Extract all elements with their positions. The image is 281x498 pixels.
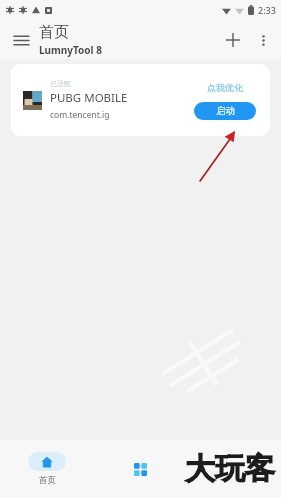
staticText: 大玩客	[185, 450, 275, 488]
button[interactable]: 首页	[24, 452, 70, 486]
button[interactable]: Add	[218, 25, 248, 55]
button[interactable]: 点我优化	[205, 81, 245, 94]
staticText: 已适配	[50, 79, 71, 88]
staticText: 启动	[216, 105, 235, 117]
staticText: 首页	[39, 23, 69, 42]
staticText: PUBG MOBILE	[50, 90, 128, 106]
button[interactable]: 已适配	[11, 64, 270, 136]
staticText: 首页	[39, 475, 56, 486]
staticText: 2:33	[258, 4, 276, 16]
button[interactable]: Open navigation menu	[6, 25, 36, 55]
button[interactable]: More options	[248, 25, 278, 55]
staticText: com.tencent.ig	[50, 109, 110, 121]
button[interactable]: Tools	[123, 452, 157, 486]
button[interactable]: 启动	[194, 102, 256, 120]
staticText: LumnyTool 8	[39, 43, 102, 57]
staticText: 点我优化	[207, 82, 243, 93]
